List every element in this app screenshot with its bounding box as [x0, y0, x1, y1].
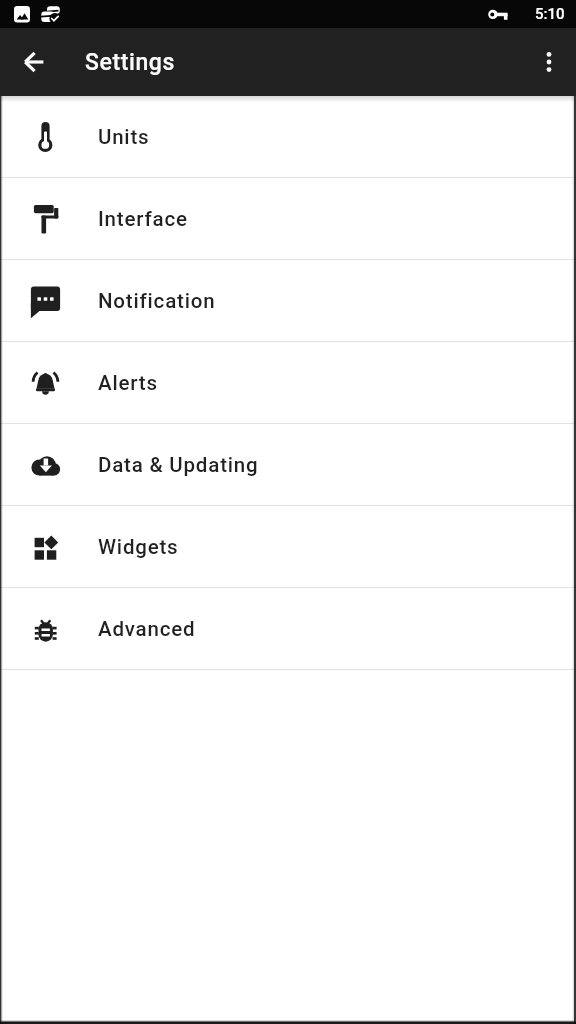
staticText: Interface [98, 207, 188, 231]
button[interactable]: Interface [0, 178, 576, 260]
staticText: Widgets [98, 535, 179, 559]
staticText: Units [98, 125, 150, 149]
button[interactable]: Notification [0, 260, 576, 342]
staticText: Notification [98, 289, 216, 313]
button[interactable]: Widgets [0, 506, 576, 588]
button[interactable] [532, 28, 576, 96]
staticText: Alerts [98, 371, 158, 395]
staticText: 5:10 [535, 5, 565, 23]
button[interactable]: Units [0, 96, 576, 178]
staticText: Data & Updating [98, 453, 259, 477]
staticText: Advanced [98, 617, 196, 641]
staticText: Settings [85, 49, 175, 76]
button[interactable]: Data & Updating [0, 424, 576, 506]
button[interactable]: Alerts [0, 342, 576, 424]
button[interactable] [0, 28, 56, 96]
button[interactable]: Advanced [0, 588, 576, 670]
